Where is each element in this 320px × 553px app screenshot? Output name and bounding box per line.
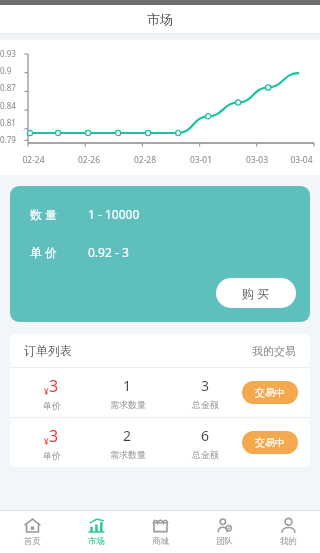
staticText: 总金额 <box>192 399 219 410</box>
staticText: ¥ <box>44 386 49 397</box>
staticText: 订单列表 <box>24 343 72 358</box>
staticText: 购 买 <box>242 285 270 301</box>
staticText: 0.87 <box>0 82 16 93</box>
staticText: 0.84 <box>0 100 16 111</box>
staticText: 03-03 <box>229 154 285 166</box>
staticText: 需求数量 <box>110 399 146 410</box>
button[interactable]: 购 买 <box>216 278 296 308</box>
staticText: 我的交易 <box>252 344 296 358</box>
staticText: 单价 <box>43 400 61 411</box>
staticText: 我的 <box>280 536 297 547</box>
button[interactable]: 商城 <box>128 511 192 553</box>
staticText: 02-26 <box>61 154 117 166</box>
button[interactable]: 交易中 <box>242 381 298 404</box>
staticText: 需求数量 <box>110 449 146 460</box>
staticText: 单价 <box>43 450 61 461</box>
staticText: 1 <box>123 376 132 395</box>
staticText: 团队 <box>216 536 233 547</box>
staticText: 1 - 10000 <box>88 206 140 222</box>
staticText: 3 <box>201 376 210 395</box>
staticText: 3 <box>49 375 59 397</box>
staticText: 02-24 <box>6 154 61 166</box>
staticText: 市场 <box>88 536 105 547</box>
button[interactable]: 首页 <box>0 511 64 553</box>
staticText: 03-01 <box>173 154 229 166</box>
staticText: 交易中 <box>255 386 285 399</box>
button[interactable]: 交易中 <box>242 431 298 454</box>
staticText: 交易中 <box>255 436 285 449</box>
button[interactable]: ¥ <box>10 368 310 417</box>
staticText: 0.93 <box>0 48 16 59</box>
button[interactable]: 团队 <box>192 511 256 553</box>
button[interactable]: 我的 <box>256 511 320 553</box>
button[interactable]: 我的交易 <box>252 344 296 358</box>
staticText: 单 价 <box>30 244 58 260</box>
staticText: 3 <box>49 425 59 447</box>
button[interactable]: ¥ <box>10 418 310 467</box>
staticText: 0.92 - 3 <box>88 244 129 260</box>
staticText: 03-04 <box>285 154 318 166</box>
staticText: 0.9 <box>0 65 12 76</box>
staticText: 6 <box>201 426 210 445</box>
staticText: 0.79 <box>0 134 16 145</box>
staticText: 总金额 <box>192 449 219 460</box>
staticText: 市场 <box>147 11 173 27</box>
staticText: 0.81 <box>0 117 16 128</box>
staticText: ¥ <box>44 436 49 447</box>
staticText: 数 量 <box>30 206 58 222</box>
staticText: 首页 <box>24 536 41 547</box>
staticText: 2 <box>123 426 132 445</box>
button[interactable]: 市场 <box>64 511 128 553</box>
staticText: 商城 <box>152 536 169 547</box>
staticText: 02-28 <box>117 154 173 166</box>
